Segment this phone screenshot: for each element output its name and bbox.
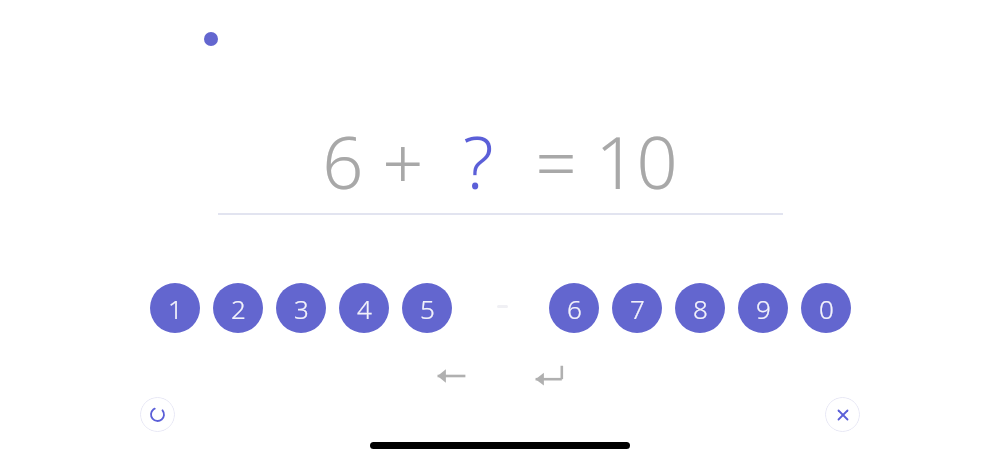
staticText: 2 — [231, 291, 246, 326]
staticText: 3 — [294, 291, 309, 326]
button[interactable]: 4 — [339, 283, 389, 333]
button[interactable]: Enter — [525, 352, 573, 400]
button[interactable]: Backspace — [427, 352, 475, 400]
button[interactable]: Close — [825, 397, 860, 432]
staticText: 6 — [567, 291, 582, 326]
button[interactable]: 2 — [213, 283, 263, 333]
staticText: 8 — [693, 291, 708, 326]
staticText: 0 — [819, 291, 834, 326]
button[interactable]: 1 — [150, 283, 200, 333]
button[interactable]: 7 — [612, 283, 662, 333]
staticText: 4 — [357, 291, 372, 326]
button[interactable]: Restart — [140, 397, 175, 432]
staticText: 1 — [168, 291, 183, 326]
staticText: ? — [463, 112, 494, 196]
button[interactable]: 9 — [738, 283, 788, 333]
staticText: 9 — [756, 291, 771, 326]
button[interactable]: 8 — [675, 283, 725, 333]
staticText: 6 + = 10 — [322, 112, 678, 196]
other: Status indicator — [204, 32, 218, 46]
button[interactable]: 3 — [276, 283, 326, 333]
button[interactable]: 0 — [801, 283, 851, 333]
staticText: 5 — [420, 291, 435, 326]
staticText: 7 — [630, 291, 645, 326]
button[interactable]: 5 — [402, 283, 452, 333]
button[interactable]: 6 — [549, 283, 599, 333]
